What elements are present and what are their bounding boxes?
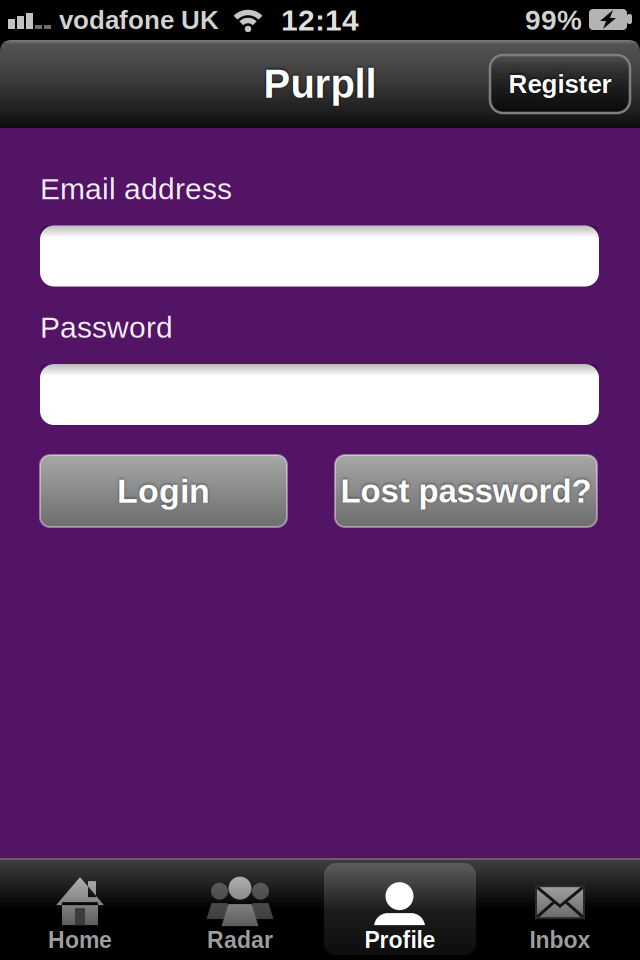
staticText: Lost password? xyxy=(340,473,591,509)
staticText: Login xyxy=(117,472,210,510)
staticText: Register xyxy=(508,69,611,98)
button[interactable]: Register xyxy=(490,55,630,113)
staticText: Email address xyxy=(40,172,232,205)
staticText: vodafone UK xyxy=(59,5,219,34)
button[interactable]: Password xyxy=(40,364,599,425)
staticText: Profile xyxy=(364,927,435,953)
button[interactable]: Home xyxy=(0,858,160,960)
staticText: Inbox xyxy=(529,927,590,953)
staticText: 99% xyxy=(525,4,582,36)
staticText: Password xyxy=(40,310,173,344)
staticText: Home xyxy=(48,927,112,953)
button[interactable]: Inbox xyxy=(480,858,640,960)
staticText: Purpll xyxy=(263,62,376,106)
button[interactable]: Lost password? xyxy=(335,455,597,527)
staticText: 12:14 xyxy=(281,3,359,37)
button[interactable]: Radar xyxy=(160,858,320,960)
button[interactable]: Email address xyxy=(40,225,599,286)
staticText: Radar xyxy=(207,927,273,953)
button[interactable]: Profile xyxy=(320,858,480,960)
button[interactable]: Login xyxy=(40,455,287,527)
